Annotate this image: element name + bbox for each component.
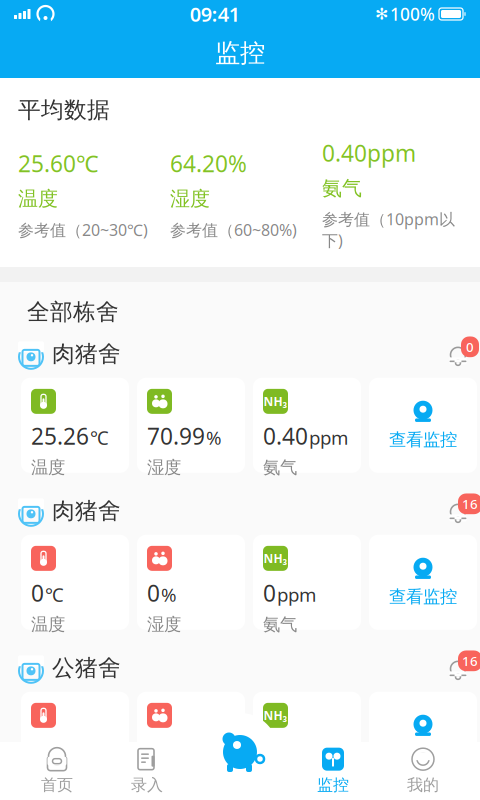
button[interactable]: 肉猪舍 <box>0 491 480 531</box>
staticText: 湿度 <box>147 771 181 792</box>
staticText: 25.60℃ <box>18 148 99 179</box>
staticText: 肉猪舍 <box>52 497 121 525</box>
button[interactable]: 查看监控 <box>369 535 477 630</box>
staticText: 查看监控 <box>389 743 457 764</box>
staticText: % <box>206 425 222 450</box>
staticText: 0 <box>31 578 44 608</box>
staticText: 参考值（60~80%) <box>170 219 297 240</box>
staticText: 氨气 <box>322 176 362 200</box>
staticText: 温度 <box>18 187 58 211</box>
staticText: 0.40 <box>263 421 308 451</box>
button[interactable]: 公猪舍 <box>0 648 480 688</box>
staticText: 首页 <box>41 775 73 795</box>
staticText: NH₃ <box>263 393 287 409</box>
staticText: 我的 <box>407 775 439 795</box>
staticText: 0.40ppm <box>322 138 416 168</box>
button[interactable]: 查看监控 <box>369 692 477 787</box>
button[interactable]: NH₃ <box>253 692 361 787</box>
staticText: 查看监控 <box>389 429 457 450</box>
staticText: 100% <box>390 2 435 25</box>
staticText: 公猪舍 <box>52 654 121 682</box>
staticText: 监控 <box>215 37 265 68</box>
staticText: % <box>161 582 177 607</box>
staticText: ℃ <box>45 582 64 607</box>
staticText: 温度 <box>31 457 65 478</box>
staticText: 湿度 <box>170 187 210 211</box>
staticText: 温度 <box>31 614 65 635</box>
staticText: ppm <box>309 425 348 450</box>
button[interactable]: 0 <box>21 535 129 630</box>
button[interactable]: 0 <box>137 692 245 787</box>
staticText: 0 <box>466 338 474 356</box>
staticText: 肉猪舍 <box>52 340 121 368</box>
staticText: 温度 <box>31 771 65 792</box>
staticText: ppm <box>277 582 316 607</box>
staticText: 氨气 <box>263 457 297 478</box>
button[interactable]: 0 <box>137 535 245 630</box>
staticText: ℃ <box>90 425 109 450</box>
button[interactable]: NH₃ <box>253 378 361 473</box>
button[interactable]: 查看监控 <box>369 378 477 473</box>
button[interactable]: 肉猪舍 <box>0 334 480 374</box>
staticText: 录入 <box>131 775 163 795</box>
staticText: 25.26 <box>31 421 89 451</box>
staticText: ✻ <box>375 5 388 23</box>
staticText: 监控 <box>317 775 349 795</box>
staticText: ℃ <box>45 739 64 764</box>
staticText: 0 <box>147 735 160 765</box>
button[interactable]: 25.26 <box>21 378 129 473</box>
staticText: NH₃ <box>263 550 287 566</box>
staticText: 16 <box>462 495 478 513</box>
button[interactable]: 添加 <box>202 713 278 789</box>
staticText: 70.99 <box>147 421 205 451</box>
staticText: 平均数据 <box>18 96 110 124</box>
staticText: 湿度 <box>147 457 181 478</box>
staticText: 参考值（20~30℃) <box>18 219 148 240</box>
button[interactable]: 首页 <box>12 743 102 799</box>
button[interactable]: 录入 <box>102 743 192 799</box>
staticText: 湿度 <box>147 614 181 635</box>
staticText: 0 <box>147 578 160 608</box>
button[interactable]: 70.99 <box>137 378 245 473</box>
staticText: 64.20% <box>170 148 247 179</box>
button[interactable]: 0 <box>21 692 129 787</box>
button[interactable]: 监控 <box>288 743 378 799</box>
staticText: 0 <box>263 578 276 608</box>
staticText: 氨气 <box>263 614 297 635</box>
button[interactable]: NH₃ <box>253 535 361 630</box>
button[interactable]: 我的 <box>378 743 468 799</box>
staticText: 0 <box>263 735 276 765</box>
staticText: 16 <box>462 652 478 670</box>
staticText: 09:41 <box>190 1 240 27</box>
staticText: 全部栋舍 <box>27 298 119 326</box>
staticText: 查看监控 <box>389 586 457 607</box>
staticText: NH₃ <box>263 707 287 723</box>
staticText: 参考值（10ppm以下) <box>322 208 455 251</box>
